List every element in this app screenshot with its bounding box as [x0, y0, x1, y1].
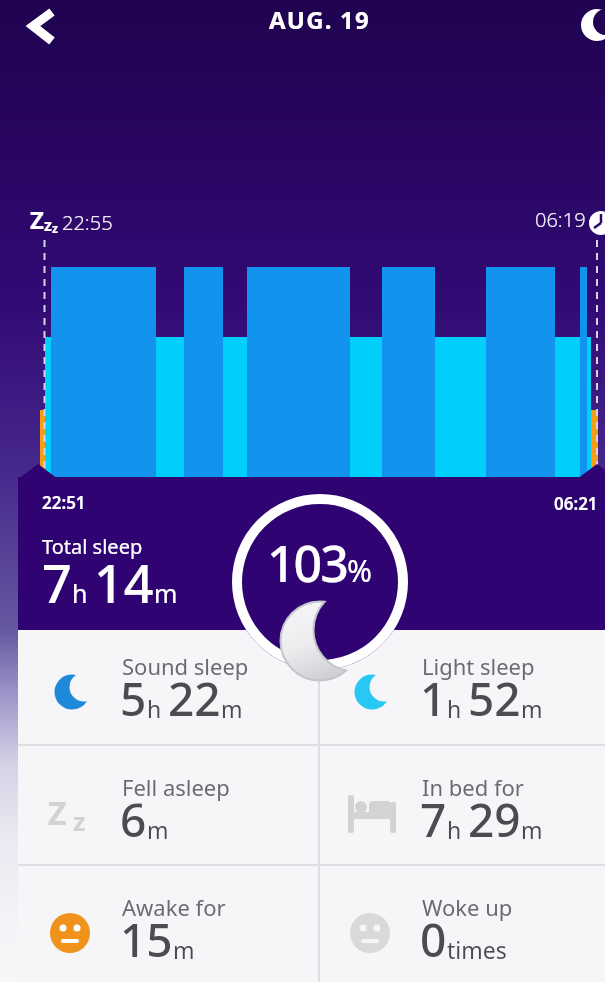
- staticText: h: [447, 693, 468, 724]
- staticText: m: [147, 814, 169, 845]
- staticText: 1: [420, 667, 447, 730]
- staticText: %: [347, 550, 372, 591]
- staticText: m: [221, 693, 243, 724]
- button[interactable]: In bed for: [318, 745, 605, 862]
- button[interactable]: [575, 2, 605, 46]
- staticText: Z: [30, 203, 44, 236]
- button[interactable]: Light sleep: [318, 630, 605, 747]
- staticText: 14: [94, 547, 154, 618]
- staticText: Woke up: [422, 892, 513, 922]
- staticText: 06:21: [554, 492, 598, 515]
- staticText: 22: [168, 667, 221, 730]
- staticText: z: [73, 804, 86, 838]
- staticText: m: [173, 934, 195, 965]
- button[interactable]: Awake for: [18, 865, 305, 982]
- button[interactable]: Woke up: [318, 865, 605, 982]
- staticText: In bed for: [422, 772, 524, 802]
- staticText: m: [521, 693, 543, 724]
- staticText: 06:19: [535, 206, 586, 233]
- staticText: Awake for: [122, 892, 226, 922]
- staticText: 29: [468, 788, 521, 851]
- staticText: Total sleep: [42, 533, 143, 560]
- button[interactable]: Sound sleep: [18, 630, 305, 747]
- staticText: m: [521, 814, 543, 845]
- staticText: Sound sleep: [122, 651, 249, 681]
- staticText: h: [147, 693, 168, 724]
- staticText: 103: [267, 529, 347, 597]
- staticText: Fell asleep: [122, 772, 230, 802]
- staticText: 7: [420, 788, 447, 851]
- staticText: 6: [120, 788, 147, 851]
- staticText: AUG. 19: [269, 3, 370, 36]
- staticText: z: [44, 214, 52, 236]
- staticText: h: [447, 814, 468, 845]
- staticText: m: [154, 576, 178, 610]
- staticText: 0: [420, 908, 447, 971]
- button[interactable]: Z: [18, 745, 305, 862]
- staticText: 22:55: [62, 209, 113, 236]
- staticText: times: [447, 934, 507, 965]
- staticText: 7: [42, 547, 72, 618]
- button[interactable]: [20, 4, 64, 48]
- staticText: 5: [120, 667, 147, 730]
- staticText: Z: [48, 791, 67, 835]
- staticText: 15: [120, 908, 173, 971]
- staticText: 22:51: [42, 491, 86, 514]
- staticText: h: [72, 576, 94, 610]
- staticText: Light sleep: [422, 651, 535, 681]
- staticText: z: [52, 220, 58, 236]
- staticText: 52: [468, 667, 521, 730]
